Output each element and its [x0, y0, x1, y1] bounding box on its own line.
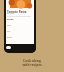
- button[interactable]: Boil: [7, 23, 31, 27]
- staticText: Stir: [7, 30, 11, 33]
- staticText: 25 min: [7, 12, 15, 15]
- button[interactable]: Stir: [7, 29, 31, 33]
- staticText: Bake: [7, 36, 13, 39]
- staticText: Steps: [7, 17, 14, 20]
- button[interactable]: Steps: [7, 16, 31, 20]
- button[interactable]: Bake: [7, 35, 31, 39]
- staticText: Boil: [7, 24, 11, 27]
- staticText: Tomato Pasta: [7, 10, 27, 14]
- button[interactable]: Start cooking: [6, 46, 11, 49]
- staticText: Cook along: [23, 59, 41, 63]
- button[interactable]: Start cooking: [4, 44, 36, 53]
- staticText: with recipes.: [22, 63, 43, 67]
